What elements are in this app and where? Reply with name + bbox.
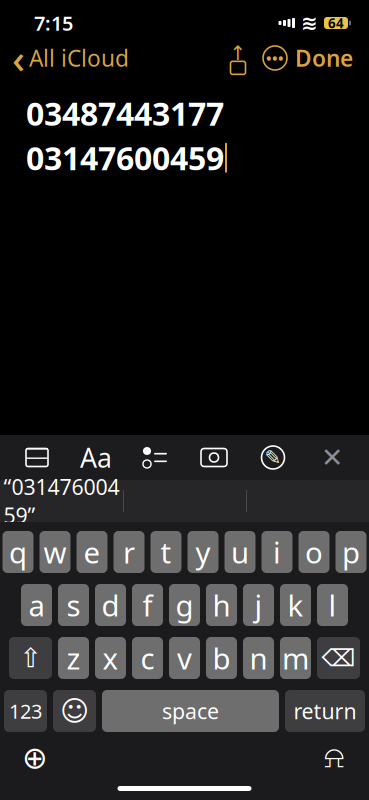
staticText: z [66, 638, 80, 677]
staticText: return [293, 697, 356, 725]
button[interactable]: Markup [251, 435, 295, 479]
button[interactable]: More [255, 41, 295, 75]
button[interactable]: Format [74, 435, 118, 479]
staticText: m [282, 638, 309, 677]
staticText: q [9, 532, 27, 571]
staticText: space [162, 697, 219, 725]
staticText: Done [295, 43, 353, 73]
button[interactable]: z [58, 637, 89, 679]
staticText: e [83, 532, 100, 571]
staticText: u [231, 532, 249, 571]
staticText: “03147600459” [3, 473, 119, 529]
staticText: ✕ [321, 442, 343, 473]
staticText: 64 [328, 14, 344, 32]
staticText: t [160, 532, 171, 571]
staticText: i [273, 532, 281, 571]
staticText: h [212, 585, 230, 624]
staticText: d [101, 585, 119, 624]
button[interactable]: return [285, 690, 365, 732]
button[interactable]: h [206, 584, 237, 626]
button[interactable]: l [317, 584, 348, 626]
staticText: x [102, 638, 118, 677]
button[interactable]: 123 [4, 690, 47, 732]
staticText: l [328, 585, 336, 624]
staticText: ••• [266, 48, 284, 68]
button[interactable]: s [58, 584, 89, 626]
button[interactable]: y [187, 531, 218, 573]
staticText: v [177, 638, 192, 677]
staticText: 7:15 [34, 10, 73, 36]
staticText: n [249, 638, 267, 677]
button[interactable]: Next keyboard [12, 738, 58, 778]
button[interactable]: u [224, 531, 255, 573]
button[interactable]: a [21, 584, 52, 626]
button[interactable]: c [132, 637, 163, 679]
staticText: ☺ [60, 695, 89, 727]
button[interactable]: Shift [9, 637, 52, 679]
button[interactable]: o [298, 531, 329, 573]
staticText: w [43, 532, 66, 571]
button[interactable]: space [102, 690, 279, 732]
button[interactable]: n [243, 637, 274, 679]
button[interactable]: w [39, 531, 70, 573]
button[interactable]: r [113, 531, 144, 573]
staticText: k [287, 585, 303, 624]
button[interactable]: i [261, 531, 292, 573]
button[interactable]: d [95, 584, 126, 626]
button[interactable]: g [169, 584, 200, 626]
button[interactable]: Share [221, 41, 255, 75]
staticText: 03147600459 [26, 136, 224, 179]
button[interactable]: Table [15, 435, 59, 479]
staticText: 123 [9, 698, 42, 724]
button[interactable]: p [335, 531, 366, 573]
staticText: All iCloud [29, 43, 129, 73]
staticText: ⊕ [22, 741, 48, 775]
button[interactable]: ‹ [0, 25, 129, 90]
staticText: ✎ [264, 446, 281, 469]
staticText: ⌫ [321, 644, 355, 672]
button[interactable]: q [2, 531, 33, 573]
button[interactable]: f [132, 584, 163, 626]
staticText: g [175, 585, 193, 624]
staticText: r [123, 532, 135, 571]
staticText: b [212, 638, 230, 677]
button[interactable]: Close [310, 435, 354, 479]
button[interactable]: e [76, 531, 107, 573]
staticText: f [142, 585, 152, 624]
button[interactable]: v [169, 637, 200, 679]
button[interactable]: t [150, 531, 181, 573]
button[interactable]: Camera [192, 435, 236, 479]
button[interactable]: “03147600459” [0, 480, 123, 522]
staticText: s [66, 585, 80, 624]
button[interactable]: x [95, 637, 126, 679]
staticText: y [195, 532, 210, 571]
button[interactable]: m [280, 637, 311, 679]
staticText: ‹ [12, 31, 25, 84]
button[interactable]: Dictation [311, 738, 357, 778]
staticText: 03487443177 [26, 92, 224, 134]
staticText: ≋ [301, 12, 318, 34]
staticText: Aa [80, 440, 112, 475]
button[interactable]: b [206, 637, 237, 679]
button[interactable]: k [280, 584, 311, 626]
staticText: p [342, 532, 360, 571]
button[interactable]: j [243, 584, 274, 626]
staticText: ↑ [229, 42, 246, 64]
button[interactable]: Done [295, 37, 369, 79]
staticText: ⍾ [324, 743, 344, 773]
staticText: j [254, 585, 262, 624]
staticText: c [140, 638, 154, 677]
staticText: o [305, 532, 323, 571]
staticText: ⇧ [19, 643, 41, 673]
staticText: a [28, 585, 44, 624]
button[interactable]: Emoji [53, 690, 96, 732]
button[interactable]: Checklist [133, 435, 177, 479]
button[interactable]: Delete [317, 637, 360, 679]
